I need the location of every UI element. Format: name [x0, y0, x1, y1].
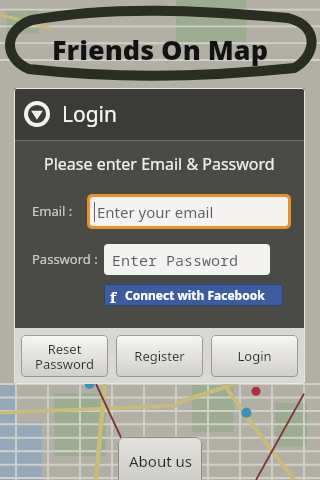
button[interactable]: Reset Password [21, 335, 108, 377]
staticText: Please enter Email & Password [44, 153, 275, 175]
staticText: Register [134, 347, 185, 365]
staticText: Password : [32, 250, 98, 268]
staticText: Login [62, 100, 118, 129]
staticText: Reset Password [35, 340, 94, 373]
staticText: Friends On Map [52, 31, 269, 68]
button[interactable]: Enter Password [104, 244, 270, 275]
staticText: Email : [32, 202, 73, 220]
staticText: Connect with Facebook [125, 287, 265, 303]
button[interactable]: Enter your email [90, 197, 288, 226]
staticText: About us [129, 451, 192, 471]
button[interactable]: About us [118, 437, 202, 480]
button[interactable]: Login [211, 335, 298, 377]
button[interactable]: Register [116, 335, 203, 377]
staticText: Enter Password [112, 250, 239, 270]
staticText: Login [237, 347, 272, 365]
other: Login [24, 101, 50, 127]
staticText: Enter your email [97, 202, 214, 222]
button[interactable]: f [104, 284, 283, 306]
staticText: f [110, 287, 117, 304]
